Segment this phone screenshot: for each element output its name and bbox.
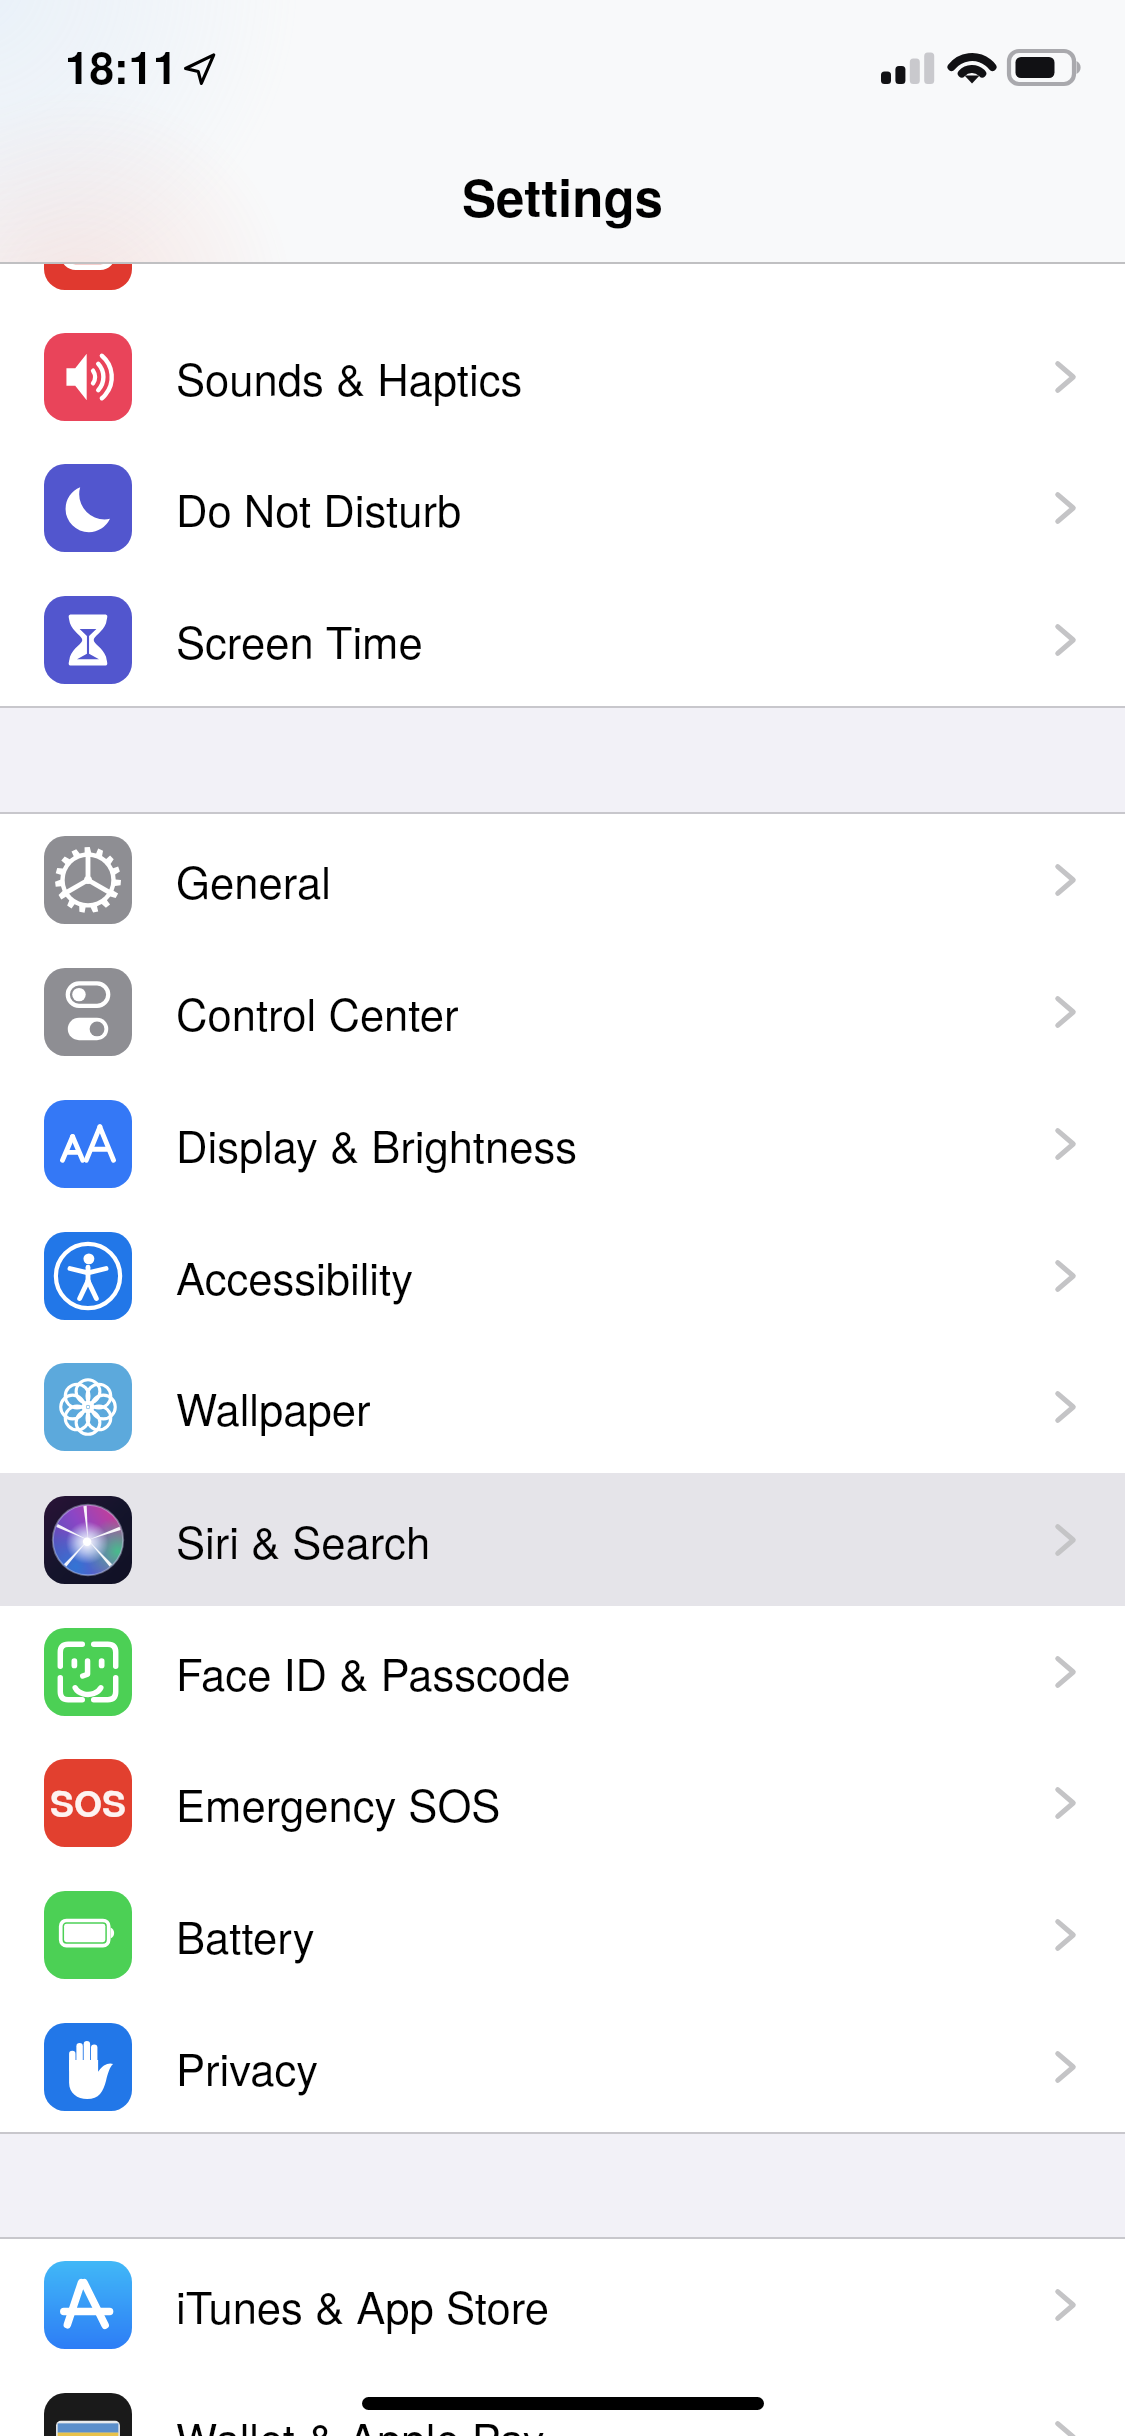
staticText: Sounds & Haptics (176, 346, 1055, 408)
staticText: Settings (462, 160, 663, 233)
other: Location services active (184, 53, 215, 84)
staticText: General (176, 849, 1055, 911)
button[interactable]: Sounds & Haptics (0, 311, 1125, 442)
staticText: Face ID & Passcode (176, 1641, 1055, 1703)
other: Cellular signal (881, 50, 937, 86)
staticText: Accessibility (176, 1245, 1055, 1307)
button[interactable]: Control Center (0, 946, 1125, 1078)
button[interactable]: SOS (0, 1737, 1125, 1869)
staticText: SOS (50, 1776, 127, 1828)
button[interactable]: Face ID & Passcode (0, 1606, 1125, 1737)
button[interactable]: General (0, 814, 1125, 946)
button[interactable]: Screen Time (0, 574, 1125, 706)
staticText: Wallpaper (176, 1376, 1055, 1438)
staticText: Display & Brightness (176, 1113, 1055, 1175)
other: Wi-Fi (946, 44, 998, 88)
staticText: iTunes & App Store (176, 2274, 1055, 2336)
button[interactable]: Battery (0, 1869, 1125, 2001)
button[interactable]: Do Not Disturb (0, 442, 1125, 574)
button[interactable]: Notifications (0, 181, 1125, 311)
staticText: 18:11 (65, 34, 178, 97)
button[interactable]: Wallet & Apple Pay (0, 2371, 1125, 2436)
staticText: Emergency SOS (176, 1772, 1055, 1834)
button[interactable]: Wallpaper (0, 1341, 1125, 1473)
staticText: Screen Time (176, 609, 1055, 671)
staticText: Wallet & Apple Pay (176, 2406, 1055, 2436)
button[interactable]: Display & Brightness (0, 1078, 1125, 1210)
button[interactable]: iTunes & App Store (0, 2239, 1125, 2371)
staticText: Do Not Disturb (176, 477, 1055, 539)
button[interactable]: Accessibility (0, 1210, 1125, 1341)
button[interactable]: Privacy (0, 2001, 1125, 2132)
staticText: Notifications (176, 215, 1055, 277)
staticText: Control Center (176, 981, 1055, 1043)
button[interactable]: Siri & Search (0, 1473, 1125, 1606)
staticText: Privacy (176, 2036, 1055, 2098)
other: Battery (1009, 50, 1081, 86)
staticText: Battery (176, 1904, 1055, 1966)
staticText: Siri & Search (176, 1509, 1055, 1571)
